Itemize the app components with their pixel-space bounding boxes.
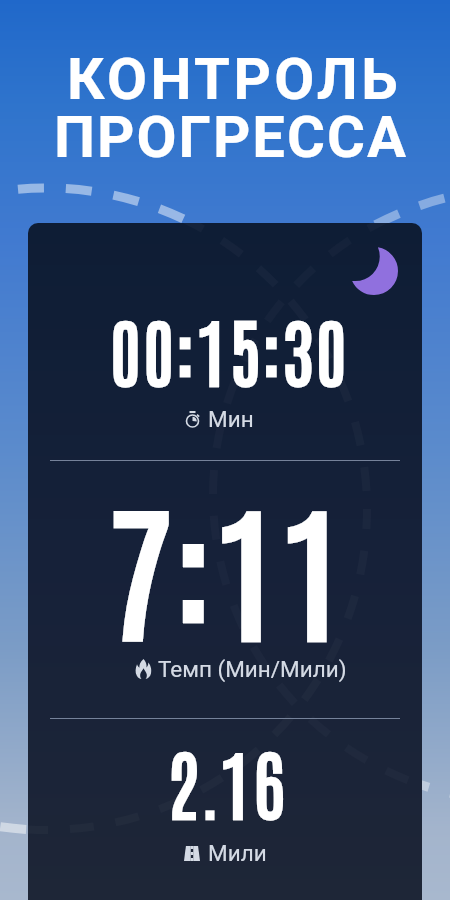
button[interactable]: Мили — [184, 840, 267, 866]
staticText: 7:11 — [110, 470, 348, 660]
staticText: 2.16 — [167, 732, 288, 829]
staticText: Темп (Мин/Мили) — [158, 656, 347, 682]
staticText: КОНТРОЛЬ — [67, 45, 401, 113]
staticText: ПРОГРЕССА — [54, 103, 408, 171]
button[interactable]: Night mode — [350, 247, 398, 295]
staticText: Мили — [208, 840, 267, 866]
button[interactable]: Темп (Мин/Мили) — [135, 656, 347, 682]
staticText: Мин — [208, 406, 254, 432]
staticText: 00:15:30 — [110, 301, 349, 397]
button[interactable]: Мин — [185, 406, 254, 432]
